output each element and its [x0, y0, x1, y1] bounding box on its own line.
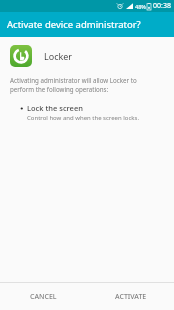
- button[interactable]: CANCEL: [0, 283, 87, 310]
- staticText: Control how and when the screen locks.: [27, 114, 139, 122]
- staticText: 00:38: [153, 1, 171, 11]
- button[interactable]: ACTIVATE: [87, 283, 174, 310]
- staticText: Locker: [44, 50, 73, 62]
- staticText: ACTIVATE: [115, 292, 147, 302]
- staticText: 48%: [135, 3, 146, 10]
- staticText: Activating administrator will allow Lock…: [10, 76, 162, 94]
- staticText: CANCEL: [30, 292, 57, 302]
- staticText: Lock the screen: [27, 103, 83, 113]
- staticText: Activate device administrator?: [7, 18, 141, 31]
